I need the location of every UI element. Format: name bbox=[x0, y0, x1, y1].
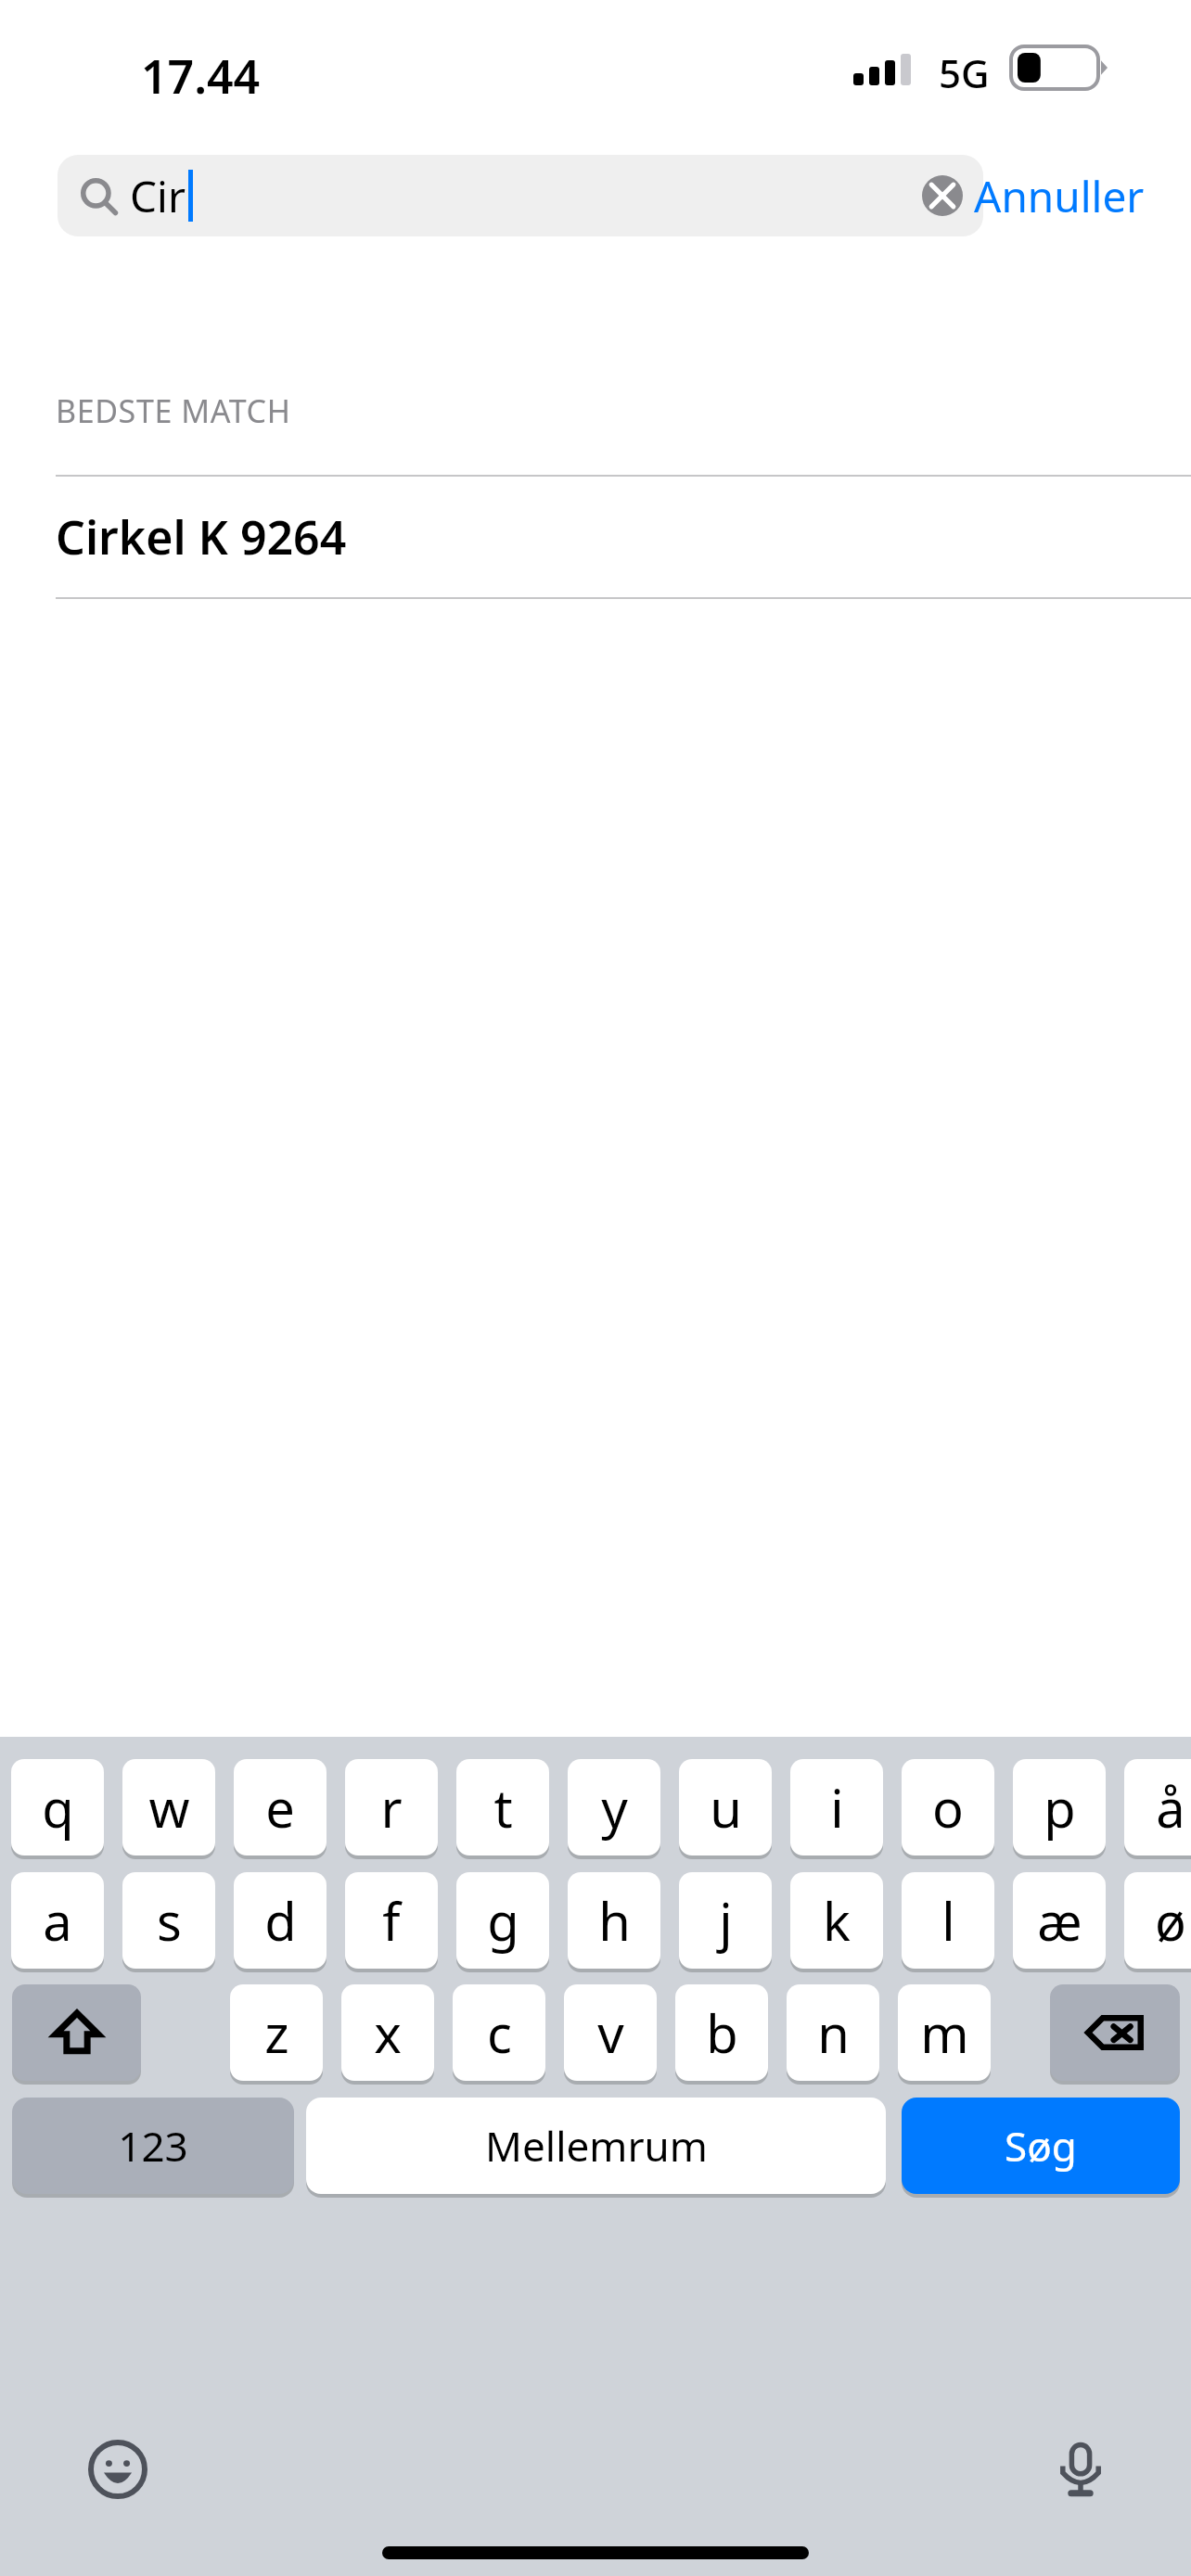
staticText: z bbox=[264, 1997, 289, 2068]
staticText: c bbox=[487, 1997, 512, 2068]
button[interactable]: l bbox=[902, 1872, 994, 1972]
button[interactable]: ø bbox=[1124, 1872, 1191, 1972]
staticText: Annuller bbox=[974, 167, 1145, 225]
staticText: w bbox=[148, 1772, 190, 1843]
button[interactable]: d bbox=[234, 1872, 327, 1972]
button[interactable]: æ bbox=[1013, 1872, 1106, 1972]
button[interactable]: g bbox=[456, 1872, 549, 1972]
staticText: u bbox=[710, 1772, 742, 1843]
button[interactable]: n bbox=[787, 1984, 879, 2085]
button[interactable]: e bbox=[234, 1759, 327, 1859]
button[interactable]: y bbox=[568, 1759, 660, 1859]
staticText: i bbox=[830, 1772, 844, 1843]
staticText: æ bbox=[1037, 1885, 1082, 1956]
button[interactable]: k bbox=[790, 1872, 883, 1972]
staticText: r bbox=[380, 1772, 403, 1843]
button[interactable]: v bbox=[564, 1984, 657, 2085]
button[interactable]: Numbers bbox=[12, 2098, 294, 2198]
staticText: d bbox=[264, 1885, 297, 1956]
staticText: 5G bbox=[939, 46, 990, 99]
staticText: k bbox=[823, 1885, 851, 1956]
staticText: 17.44 bbox=[141, 45, 261, 108]
staticText: q bbox=[42, 1772, 74, 1843]
button[interactable]: b bbox=[675, 1984, 768, 2085]
staticText: f bbox=[382, 1885, 401, 1956]
staticText: b bbox=[706, 1997, 738, 2068]
button[interactable]: q bbox=[11, 1759, 104, 1859]
staticText: t bbox=[493, 1772, 513, 1843]
button[interactable]: å bbox=[1124, 1759, 1191, 1859]
button[interactable]: z bbox=[230, 1984, 323, 2085]
button[interactable]: s bbox=[122, 1872, 215, 1972]
staticText: å bbox=[1156, 1772, 1185, 1843]
button[interactable]: w bbox=[122, 1759, 215, 1859]
staticText: a bbox=[43, 1885, 72, 1956]
button[interactable]: Clear text bbox=[916, 170, 968, 222]
button[interactable]: Emoji keyboard bbox=[85, 2437, 150, 2502]
staticText: 123 bbox=[118, 2118, 188, 2174]
button[interactable]: i bbox=[790, 1759, 883, 1859]
staticText: y bbox=[601, 1772, 628, 1843]
button[interactable]: h bbox=[568, 1872, 660, 1972]
staticText: ø bbox=[1155, 1885, 1186, 1956]
staticText: l bbox=[941, 1885, 955, 1956]
button[interactable]: m bbox=[898, 1984, 991, 2085]
staticText: e bbox=[265, 1772, 295, 1843]
staticText: Mellemrum bbox=[485, 2118, 708, 2174]
button[interactable]: u bbox=[679, 1759, 772, 1859]
button[interactable]: x bbox=[341, 1984, 434, 2085]
button[interactable]: Backspace bbox=[1050, 1984, 1180, 2085]
button[interactable]: Cir bbox=[58, 155, 983, 236]
button[interactable]: Shift bbox=[12, 1984, 141, 2085]
staticText: x bbox=[374, 1997, 402, 2068]
staticText: p bbox=[1044, 1772, 1076, 1843]
button[interactable]: c bbox=[453, 1984, 545, 2085]
button[interactable]: o bbox=[902, 1759, 994, 1859]
staticText: Cirkel K 9264 bbox=[56, 505, 347, 568]
button[interactable]: j bbox=[679, 1872, 772, 1972]
button[interactable]: Annuller bbox=[974, 155, 1145, 236]
button[interactable]: t bbox=[456, 1759, 549, 1859]
staticText: g bbox=[487, 1885, 519, 1956]
staticText: o bbox=[932, 1772, 964, 1843]
button[interactable]: Mellemrum bbox=[306, 2098, 886, 2198]
button[interactable]: Dictation bbox=[1048, 2437, 1113, 2502]
button[interactable]: a bbox=[11, 1872, 104, 1972]
button[interactable]: p bbox=[1013, 1759, 1106, 1859]
staticText: Cir bbox=[130, 167, 186, 225]
staticText: v bbox=[597, 1997, 624, 2068]
staticText: h bbox=[598, 1885, 631, 1956]
staticText: m bbox=[920, 1997, 969, 2068]
button[interactable]: Cirkel K 9264 bbox=[0, 477, 1191, 597]
staticText: j bbox=[719, 1885, 733, 1956]
staticText: Søg bbox=[1005, 2118, 1077, 2174]
staticText: n bbox=[817, 1997, 850, 2068]
button[interactable]: Søg bbox=[902, 2098, 1180, 2198]
button[interactable]: r bbox=[345, 1759, 438, 1859]
button[interactable]: f bbox=[345, 1872, 438, 1972]
staticText: s bbox=[157, 1885, 182, 1956]
staticText: BEDSTE MATCH bbox=[56, 389, 291, 432]
